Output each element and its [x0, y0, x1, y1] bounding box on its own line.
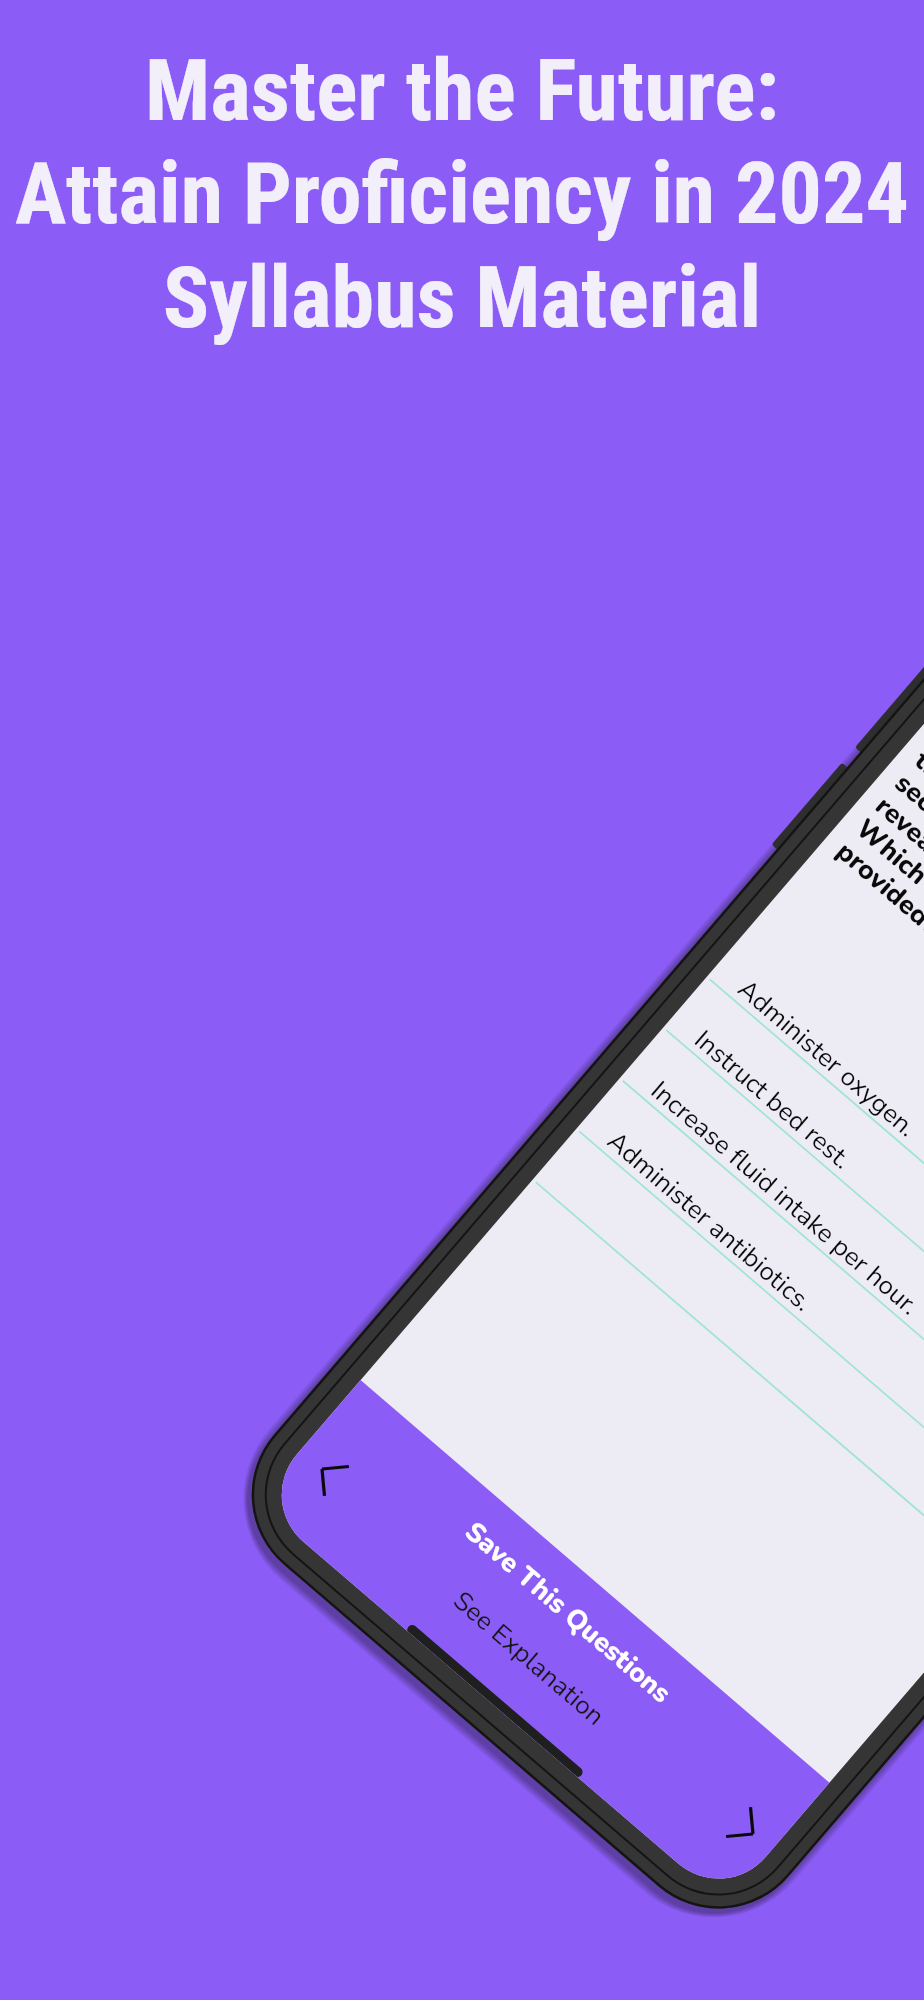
button[interactable]: Home: [388, 1609, 596, 1793]
button[interactable]: Save This Questions: [315, 1386, 824, 1836]
button[interactable]: See Explanation: [276, 1435, 783, 1881]
staticText: Master the Future: Attain Proficiency in…: [2, 40, 922, 348]
button[interactable]: Administer oxygen.: [710, 928, 924, 1376]
button[interactable]: Administer antibiotics.: [579, 1081, 924, 1529]
button[interactable]: Instruct bed rest.: [666, 979, 924, 1427]
button[interactable]: Increase fluid intake per hour.: [623, 1030, 924, 1478]
